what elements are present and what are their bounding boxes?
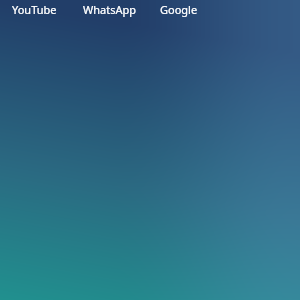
staticText: Google [160, 2, 198, 17]
staticText: YouTube [12, 2, 57, 17]
staticText: WhatsApp [83, 2, 136, 17]
